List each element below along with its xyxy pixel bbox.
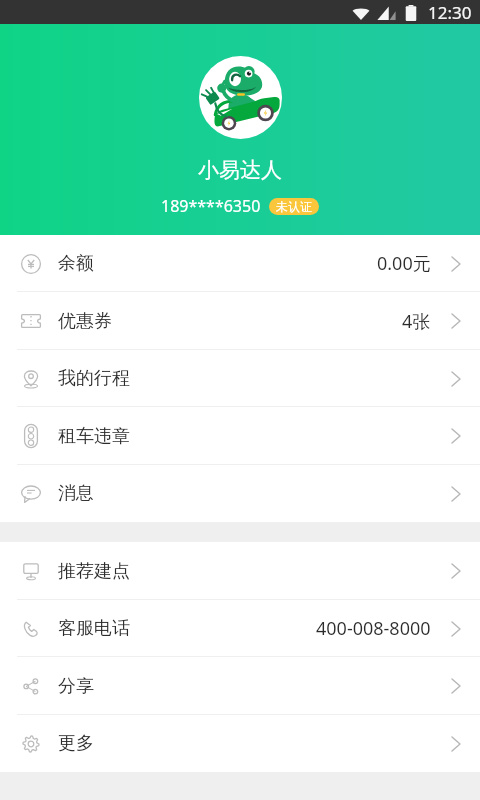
staticText: 客服电话 — [58, 617, 130, 640]
staticText: 优惠券 — [58, 310, 112, 333]
staticText: 余额 — [58, 252, 94, 275]
button[interactable]: 推荐建点 — [0, 542, 480, 600]
staticText: 小易达人 — [198, 157, 282, 183]
button[interactable]: 分享 — [0, 657, 480, 715]
button[interactable]: 客服电话 — [0, 600, 480, 657]
button[interactable]: 优惠券 — [0, 292, 480, 350]
button[interactable]: 余额 — [0, 235, 480, 292]
staticText: 我的行程 — [58, 367, 130, 390]
staticText: 推荐建点 — [58, 560, 130, 583]
button[interactable]: 租车违章 — [0, 407, 480, 465]
staticText: 12:30 — [428, 1, 472, 24]
staticText: 未认证 — [276, 199, 312, 214]
staticText: 消息 — [58, 482, 94, 505]
staticText: 0.00元 — [377, 251, 431, 276]
staticText: 租车违章 — [58, 425, 130, 448]
button[interactable]: 消息 — [0, 465, 480, 522]
staticText: 4张 — [402, 309, 431, 334]
staticText: 分享 — [58, 675, 94, 698]
staticText: 400-008-8000 — [316, 616, 431, 641]
button[interactable]: 我的行程 — [0, 350, 480, 407]
staticText: 189****6350 — [161, 195, 261, 217]
staticText: 更多 — [58, 732, 94, 755]
button[interactable]: 更多 — [0, 715, 480, 772]
